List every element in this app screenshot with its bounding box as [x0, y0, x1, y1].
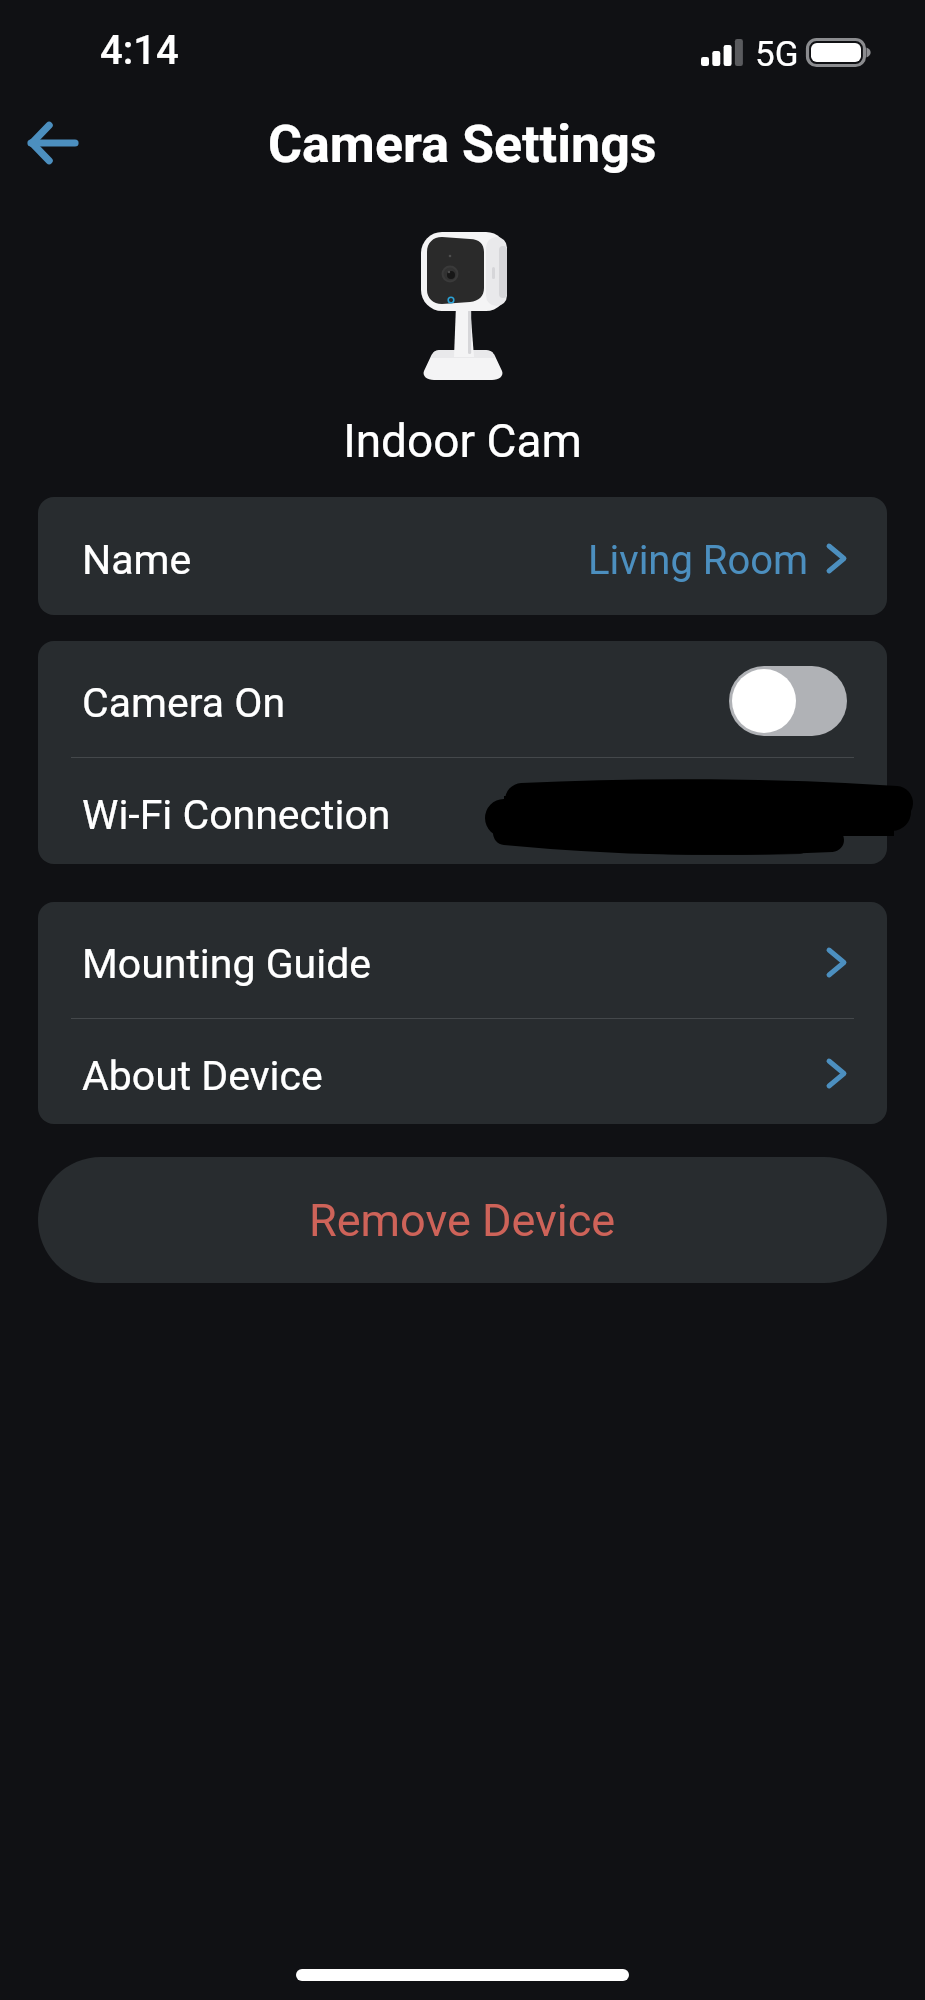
button[interactable]: Camera On toggle: [729, 666, 847, 736]
staticText: Wi-Fi Connection: [82, 791, 391, 839]
button[interactable]: About Device: [38, 1019, 887, 1124]
staticText: Name: [82, 536, 192, 584]
staticText: 5G: [755, 34, 799, 75]
staticText: About Device: [82, 1052, 323, 1100]
button[interactable]: Back: [12, 104, 90, 182]
staticText: Indoor Cam: [0, 414, 925, 468]
staticText: Living Room: [588, 537, 809, 584]
button[interactable]: Camera On: [38, 641, 887, 757]
button[interactable]: Mounting Guide: [38, 902, 887, 1018]
staticText: Mounting Guide: [82, 940, 372, 988]
staticText: Camera Settings: [268, 114, 657, 175]
staticText: Camera On: [82, 679, 286, 727]
button[interactable]: Wi-Fi Connection: [38, 758, 887, 864]
button[interactable]: Name: [38, 497, 887, 615]
button[interactable]: Remove Device: [38, 1157, 887, 1283]
staticText: 4:14: [100, 27, 179, 74]
staticText: Remove Device: [309, 1194, 616, 1247]
